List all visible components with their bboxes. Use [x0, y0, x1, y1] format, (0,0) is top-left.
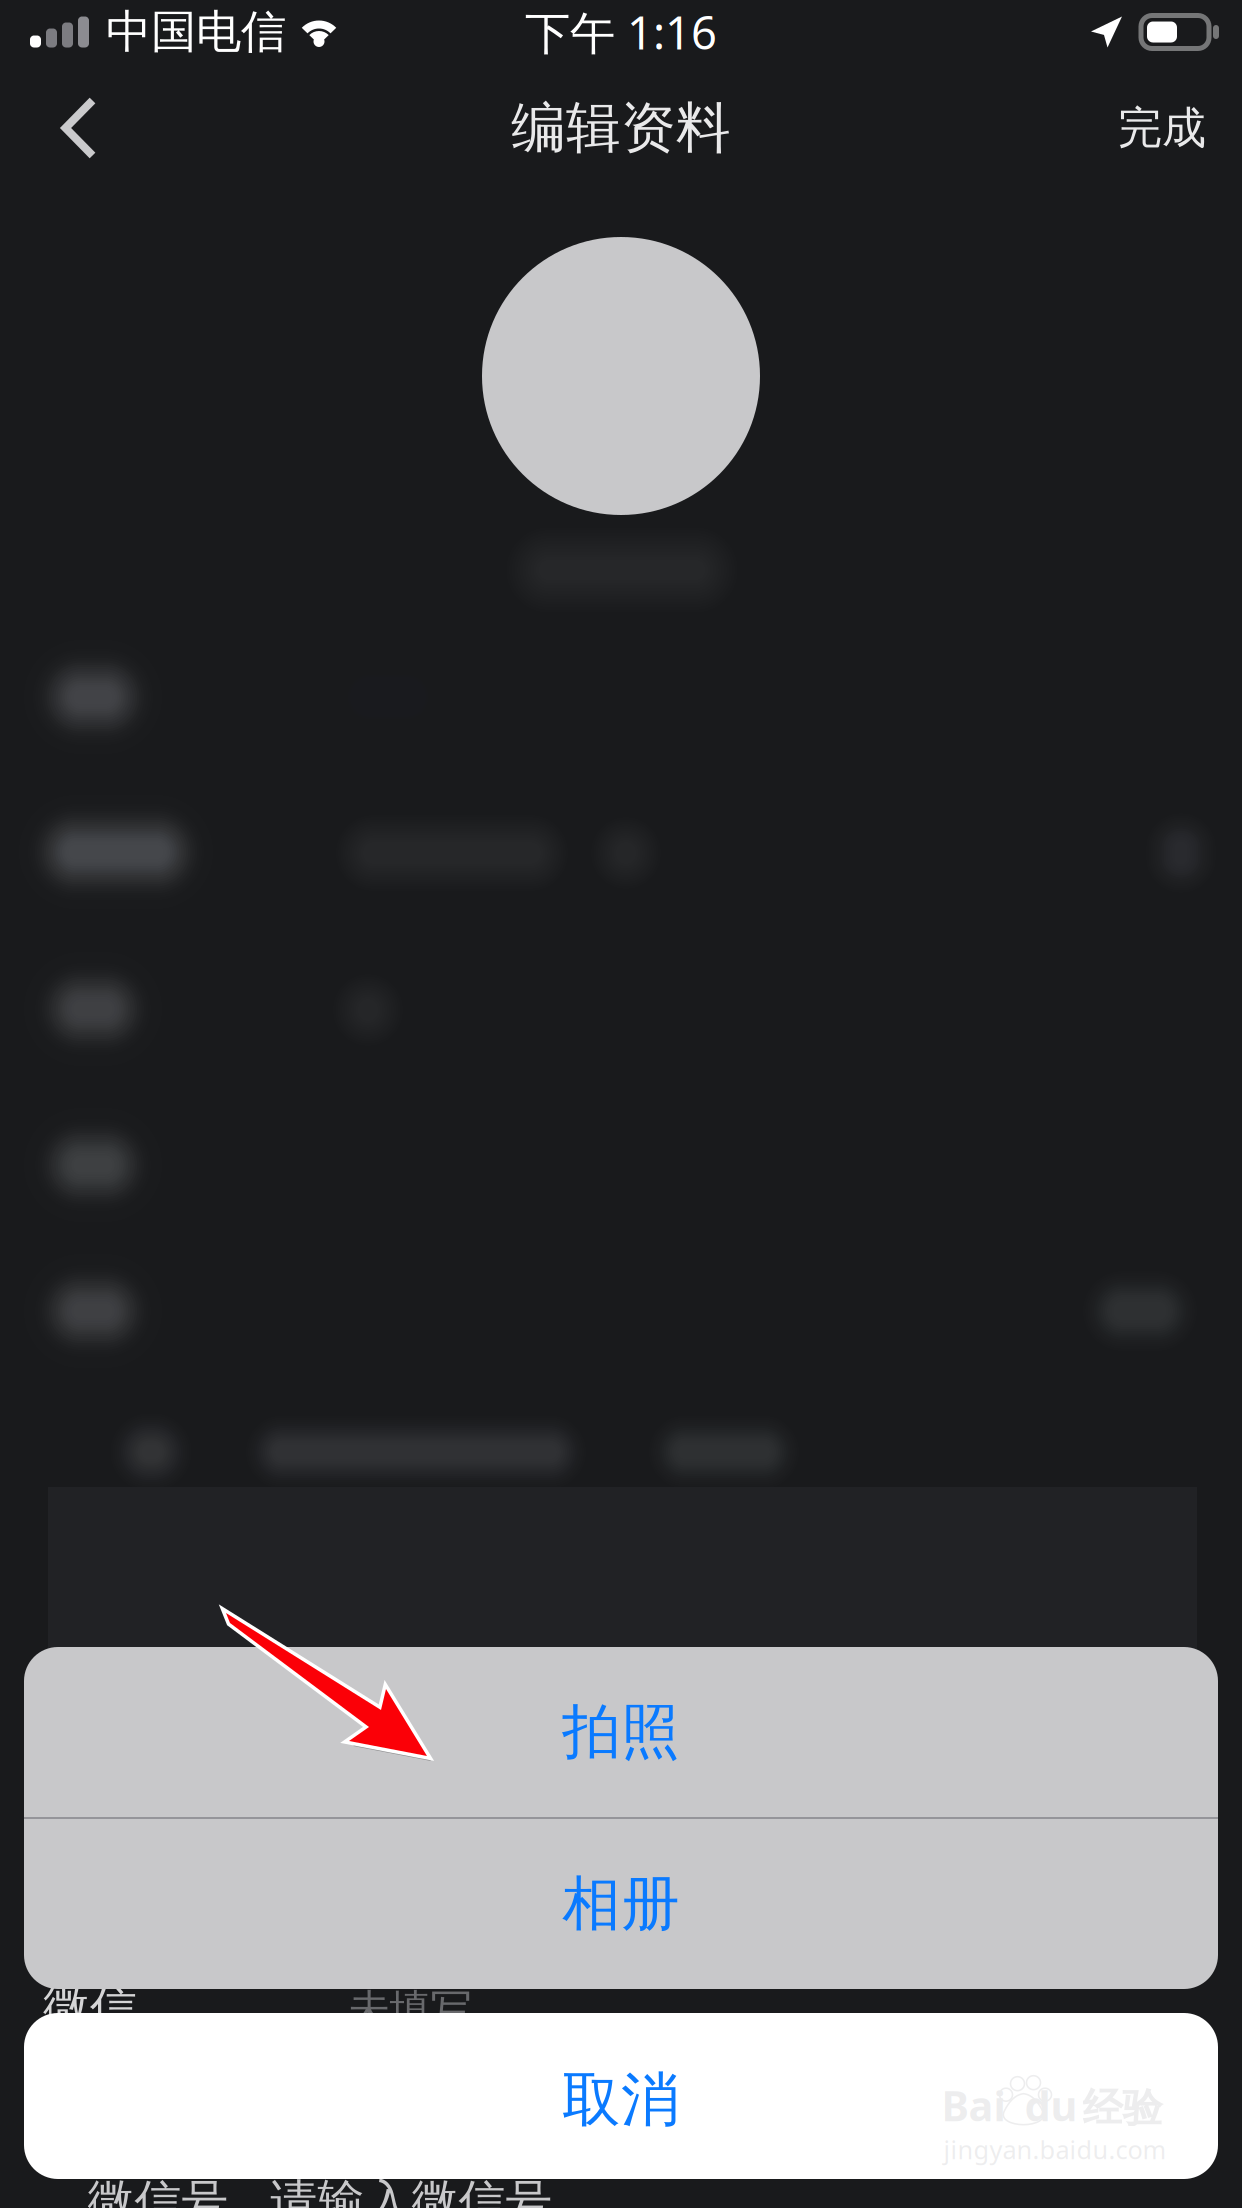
staticText: jingyan.baidu.com — [943, 2133, 1166, 2166]
staticText: Bai — [941, 2078, 1005, 2133]
staticText: 中国电信 — [106, 4, 286, 60]
staticText: 拍照 — [562, 1696, 680, 1768]
staticText: 微信 — [43, 1979, 137, 2037]
staticText: 取消 — [562, 2064, 680, 2136]
button[interactable]: 拍照 — [24, 1647, 1218, 1817]
staticText: du — [1024, 2078, 1077, 2133]
button[interactable]: 返回 — [0, 64, 158, 192]
button[interactable]: 取消 — [24, 2013, 1218, 2179]
staticText: 未填写 — [348, 1985, 471, 2035]
staticText: 完成 — [1118, 101, 1206, 155]
button[interactable]: 相册 — [24, 1819, 1218, 1989]
button[interactable]: 完成 — [1082, 64, 1242, 192]
staticText: 编辑资料 — [511, 94, 731, 161]
staticText: 相册 — [562, 1868, 680, 1940]
staticText: 下午 1:16 — [525, 2, 717, 62]
staticText: 经验 — [1082, 2083, 1162, 2133]
staticText: 微信号 请输入微信号 — [87, 2173, 552, 2208]
